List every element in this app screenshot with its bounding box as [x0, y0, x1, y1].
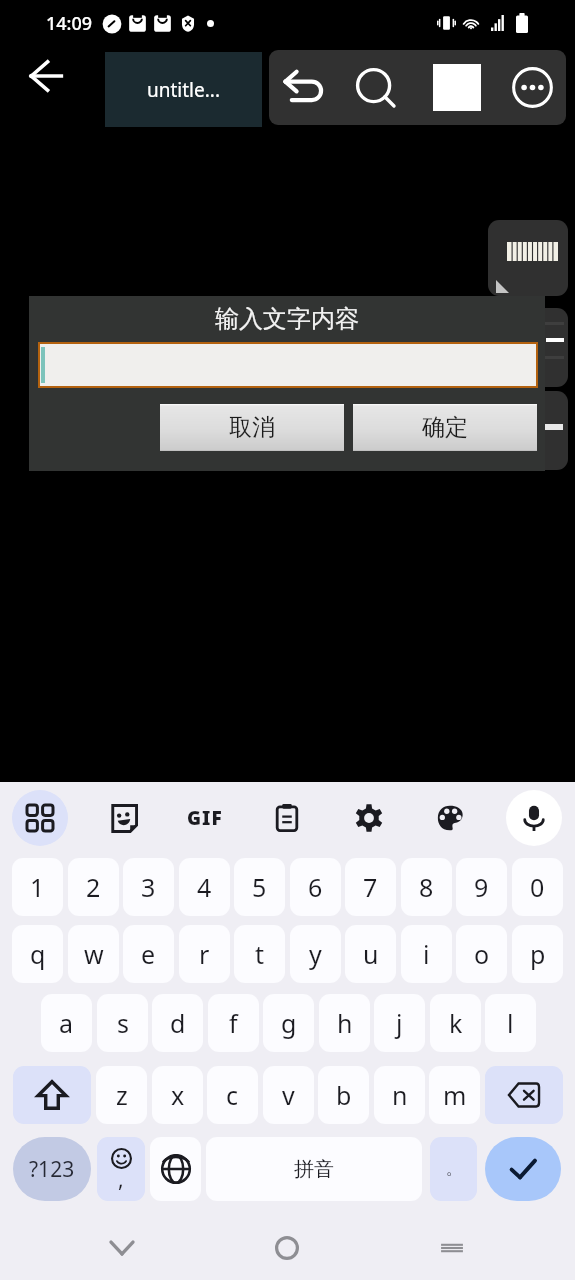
staticText: ?123 [29, 1155, 75, 1184]
staticText: 1 [30, 870, 45, 904]
staticText: a [59, 1006, 74, 1040]
button[interactable]: g [263, 994, 314, 1052]
staticText: x [171, 1078, 185, 1112]
staticText: o [474, 937, 490, 971]
button[interactable]: o [456, 925, 507, 983]
button[interactable]: Barcode [488, 220, 568, 296]
staticText: 4 [197, 870, 212, 904]
staticText: i [423, 937, 430, 971]
staticText: t [255, 937, 265, 971]
button[interactable]: Voice input [506, 790, 562, 846]
button[interactable]: w [68, 925, 119, 983]
staticText: 3 [141, 870, 156, 904]
button[interactable]: 3 [123, 858, 174, 916]
button[interactable]: Shift [13, 1066, 91, 1124]
button[interactable]: l [485, 994, 536, 1052]
staticText: 取消 [229, 413, 275, 442]
button[interactable]: v [263, 1066, 314, 1124]
staticText: s [117, 1006, 129, 1040]
button[interactable]: Item [488, 391, 568, 470]
button[interactable]: Theme [423, 790, 479, 846]
button[interactable]: e [123, 925, 174, 983]
button[interactable]: x [152, 1066, 203, 1124]
button[interactable]: Apps [12, 790, 68, 846]
button[interactable]: Clipboard [259, 790, 315, 846]
button[interactable]: Emoji and comma [97, 1137, 145, 1201]
button[interactable]: z [96, 1066, 147, 1124]
staticText: m [443, 1078, 467, 1112]
staticText: 9 [474, 870, 489, 904]
button[interactable]: s [97, 994, 148, 1052]
staticText: 0 [530, 870, 545, 904]
staticText: j [396, 1006, 403, 1040]
staticText: 5 [252, 870, 267, 904]
button[interactable]: Search [341, 50, 411, 125]
staticText: GIF [187, 805, 223, 831]
staticText: q [30, 937, 46, 971]
staticText: 6 [308, 870, 323, 904]
staticText: 输入文字内容 [215, 304, 359, 334]
button[interactable]: 0 [512, 858, 563, 916]
button[interactable]: Enter [485, 1137, 561, 1201]
button[interactable]: t [234, 925, 285, 983]
staticText: 拼音 [294, 1157, 334, 1182]
staticText: f [229, 1006, 238, 1040]
button[interactable]: 5 [234, 858, 285, 916]
staticText: d [170, 1006, 186, 1040]
button[interactable]: m [429, 1066, 480, 1124]
button[interactable]: Settings [341, 790, 397, 846]
button[interactable]: 。 [430, 1137, 477, 1201]
button[interactable]: 2 [68, 858, 119, 916]
button[interactable]: 确定 [353, 404, 537, 451]
button[interactable]: k [430, 994, 481, 1052]
staticText: h [337, 1006, 353, 1040]
button[interactable]: d [152, 994, 203, 1052]
button[interactable]: j [374, 994, 425, 1052]
button[interactable]: GIF [177, 790, 233, 846]
button[interactable]: 8 [401, 858, 452, 916]
button[interactable]: a [41, 994, 92, 1052]
button[interactable]: Recents [424, 1220, 480, 1276]
button[interactable]: Undo [269, 50, 337, 125]
staticText: , [118, 1165, 124, 1194]
button[interactable]: Back [18, 48, 74, 104]
button[interactable]: c [207, 1066, 258, 1124]
staticText: u [363, 937, 379, 971]
button[interactable]: untitle... [105, 52, 262, 127]
button[interactable]: n [374, 1066, 425, 1124]
button[interactable]: ?123 [13, 1137, 91, 1201]
button[interactable]: r [179, 925, 230, 983]
staticText: 确定 [422, 413, 468, 442]
staticText: p [530, 937, 546, 971]
button[interactable] [40, 344, 536, 386]
button[interactable]: i [401, 925, 452, 983]
button[interactable]: 6 [290, 858, 341, 916]
button[interactable]: Stickers [95, 790, 151, 846]
button[interactable]: 1 [12, 858, 63, 916]
button[interactable]: Backspace [485, 1066, 563, 1124]
button[interactable]: Item [488, 308, 568, 387]
staticText: v [282, 1078, 295, 1112]
button[interactable]: Language [150, 1137, 201, 1201]
button[interactable]: More options [498, 50, 566, 125]
button[interactable]: Hide keyboard [94, 1220, 150, 1276]
button[interactable]: 7 [345, 858, 396, 916]
button[interactable]: y [290, 925, 341, 983]
button[interactable]: Home [259, 1220, 315, 1276]
button[interactable]: p [512, 925, 563, 983]
button[interactable]: 拼音 [206, 1137, 422, 1201]
button[interactable]: 9 [456, 858, 507, 916]
staticText: n [392, 1078, 408, 1112]
staticText: g [281, 1006, 297, 1040]
button[interactable]: h [319, 994, 370, 1052]
staticText: r [199, 937, 210, 971]
button[interactable]: u [345, 925, 396, 983]
staticText: c [226, 1078, 239, 1112]
button[interactable]: Color [419, 50, 495, 125]
button[interactable]: b [318, 1066, 369, 1124]
button[interactable]: f [208, 994, 259, 1052]
button[interactable]: q [12, 925, 63, 983]
staticText: z [116, 1078, 128, 1112]
button[interactable]: 取消 [160, 404, 344, 451]
button[interactable]: 4 [179, 858, 230, 916]
